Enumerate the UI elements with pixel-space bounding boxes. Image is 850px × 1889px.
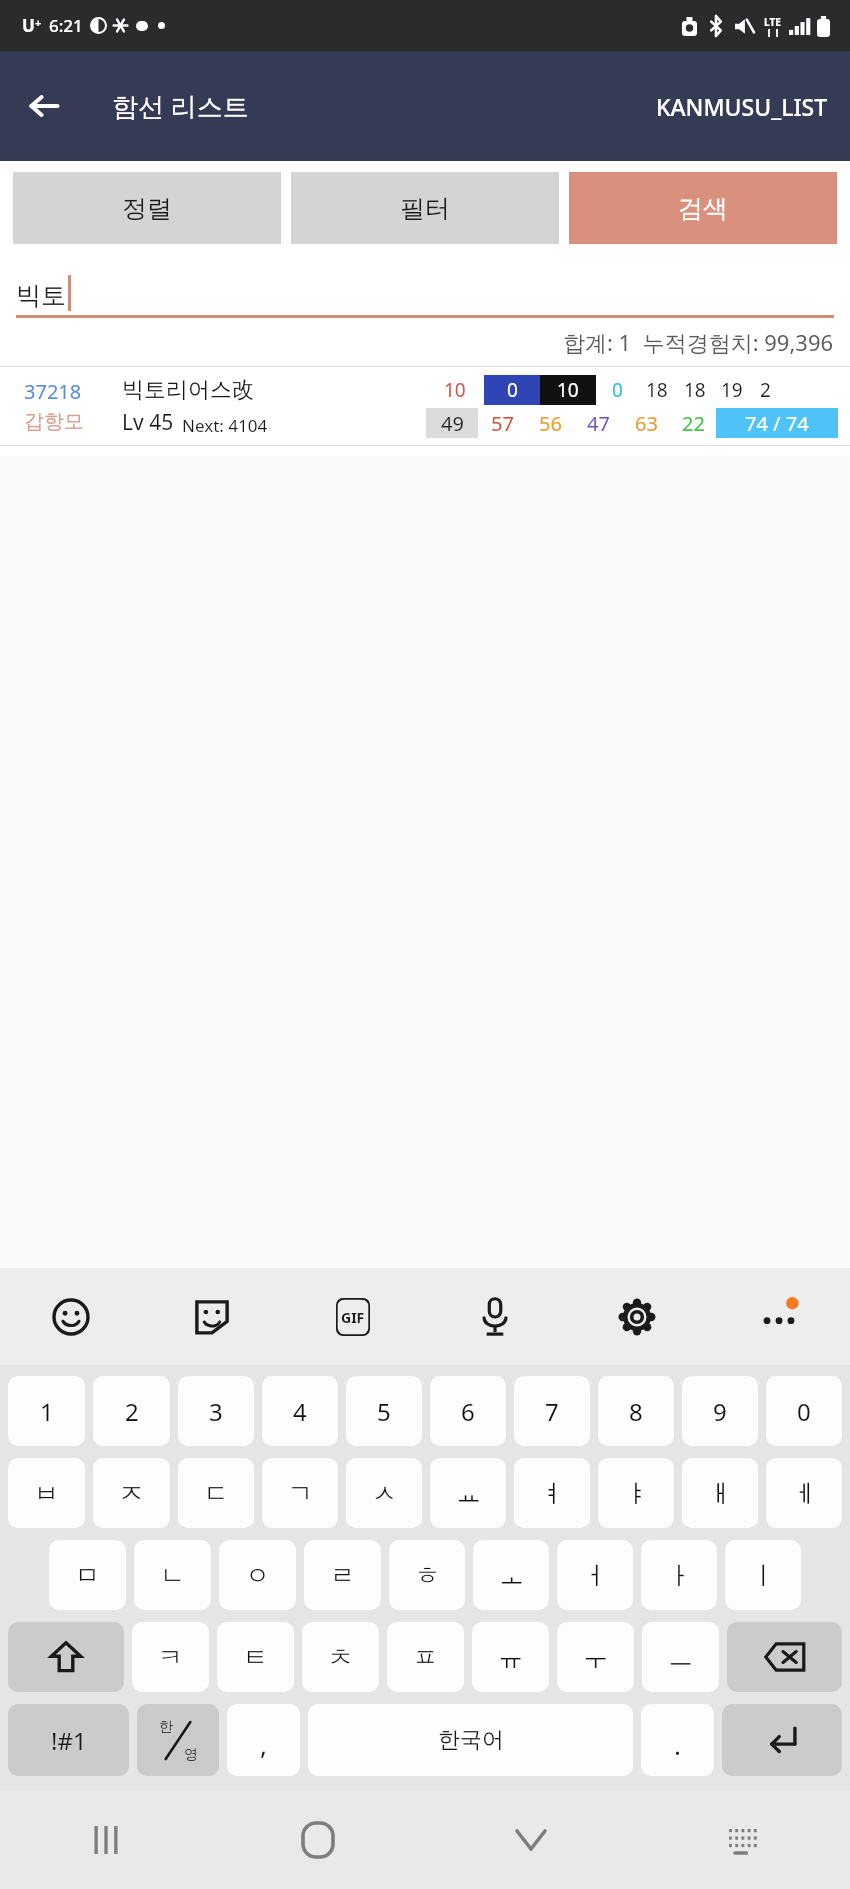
button[interactable]: 8	[598, 1376, 674, 1446]
button[interactable]: ㄱ	[262, 1458, 338, 1528]
button[interactable]: Recent apps	[0, 1790, 212, 1889]
button[interactable]: Backspace	[727, 1622, 842, 1692]
staticText: 빅토리어스改	[122, 376, 254, 404]
staticText: ㅋ	[158, 1642, 183, 1673]
staticText: ㅓ	[583, 1560, 608, 1591]
button[interactable]: Settings	[566, 1268, 708, 1365]
staticText: U	[22, 14, 35, 37]
button[interactable]: Keyboard layout	[637, 1790, 850, 1889]
button[interactable]: 한	[137, 1704, 219, 1776]
button[interactable]: 6	[430, 1376, 506, 1446]
staticText: ㅂ	[34, 1478, 59, 1509]
staticText: 18	[646, 377, 668, 403]
button[interactable]: Back	[16, 78, 72, 134]
button[interactable]: Emoji	[0, 1268, 141, 1365]
staticText: 63	[635, 410, 658, 437]
button[interactable]: ㅊ	[302, 1622, 379, 1692]
button[interactable]: 검색	[569, 172, 837, 244]
button[interactable]: ㅇ	[219, 1540, 296, 1610]
staticText: .	[674, 1727, 681, 1762]
button[interactable]: ㅜ	[557, 1622, 634, 1692]
staticText: ㅗ	[499, 1560, 524, 1591]
button[interactable]: ㄴ	[134, 1540, 211, 1610]
staticText: 49	[441, 410, 464, 437]
staticText: GIF	[341, 1308, 365, 1327]
button[interactable]: ㅓ	[557, 1540, 633, 1610]
staticText: 한국어	[438, 1726, 504, 1754]
button[interactable]: ㅛ	[430, 1458, 506, 1528]
button[interactable]: !#1	[8, 1704, 129, 1776]
button[interactable]: ㅍ	[387, 1622, 464, 1692]
staticText: 37218	[24, 378, 82, 405]
staticText: 0	[797, 1395, 811, 1428]
staticText: 검색	[678, 193, 728, 224]
staticText: ㅇ	[245, 1560, 270, 1591]
button[interactable]: ㅅ	[346, 1458, 422, 1528]
button[interactable]: ㅣ	[725, 1540, 801, 1610]
staticText: 22	[682, 410, 705, 437]
staticText: 한	[159, 1718, 173, 1736]
button[interactable]: ㅁ	[49, 1540, 126, 1610]
button[interactable]: 7	[514, 1376, 590, 1446]
button[interactable]: ㅕ	[514, 1458, 590, 1528]
button[interactable]: ㅌ	[217, 1622, 294, 1692]
button[interactable]: ㅂ	[8, 1458, 85, 1528]
staticText: ㅌ	[243, 1642, 268, 1673]
staticText: LTE	[764, 15, 781, 29]
staticText: 5	[377, 1395, 391, 1428]
staticText: ㅐ	[708, 1478, 733, 1509]
button[interactable]: Sticker	[141, 1268, 282, 1365]
staticText: ㅣ	[751, 1560, 776, 1591]
staticText: ㅡ	[668, 1642, 693, 1673]
button[interactable]: ㅡ	[642, 1622, 719, 1692]
button[interactable]: 한국어	[308, 1704, 633, 1776]
button[interactable]: 9	[682, 1376, 758, 1446]
button[interactable]: 필터	[291, 172, 559, 244]
staticText: 8	[629, 1395, 643, 1428]
staticText: 정렬	[122, 193, 172, 224]
button[interactable]: GIF	[282, 1268, 424, 1365]
button[interactable]: 37218	[0, 367, 850, 445]
button[interactable]: 3	[178, 1376, 254, 1446]
staticText: Lv 45	[122, 408, 174, 437]
staticText: 9	[713, 1395, 727, 1428]
button[interactable]: 4	[262, 1376, 338, 1446]
button[interactable]: Voice input	[424, 1268, 566, 1365]
staticText: ㅊ	[328, 1642, 353, 1673]
button[interactable]: ㅠ	[472, 1622, 549, 1692]
staticText: 4	[293, 1395, 307, 1428]
button[interactable]: ㅗ	[473, 1540, 549, 1610]
button[interactable]: Enter	[722, 1704, 842, 1776]
button[interactable]: More	[708, 1268, 850, 1365]
staticText: 18	[684, 377, 706, 403]
staticText: ㅎ	[415, 1560, 440, 1591]
button[interactable]: Shift	[8, 1622, 124, 1692]
button[interactable]: ㅏ	[641, 1540, 717, 1610]
button[interactable]: 5	[346, 1376, 422, 1446]
button[interactable]: ,	[227, 1704, 300, 1776]
staticText: ㅁ	[75, 1560, 100, 1591]
button[interactable]: ㅋ	[132, 1622, 209, 1692]
button[interactable]: 0	[766, 1376, 842, 1446]
staticText: ㄹ	[330, 1560, 355, 1591]
button[interactable]: 정렬	[13, 172, 281, 244]
button[interactable]: 1	[8, 1376, 85, 1446]
button[interactable]: ㄷ	[178, 1458, 254, 1528]
button[interactable]: ㄹ	[304, 1540, 381, 1610]
staticText: ㅛ	[456, 1478, 481, 1509]
button[interactable]: ㅐ	[682, 1458, 758, 1528]
button[interactable]: Home	[212, 1790, 424, 1889]
button[interactable]: .	[641, 1704, 714, 1776]
button[interactable]: ㅑ	[598, 1458, 674, 1528]
staticText: 0	[612, 377, 623, 403]
staticText: KANMUSU_LIST	[656, 91, 828, 122]
button[interactable]: 2	[93, 1376, 170, 1446]
staticText: ㅜ	[583, 1642, 608, 1673]
staticText: 필터	[400, 193, 450, 224]
staticText: 6	[461, 1395, 475, 1428]
button[interactable]: ㅈ	[93, 1458, 170, 1528]
button[interactable]: Hide keyboard	[424, 1790, 637, 1889]
staticText: ,	[260, 1727, 267, 1762]
button[interactable]: ㅔ	[766, 1458, 842, 1528]
button[interactable]: ㅎ	[389, 1540, 465, 1610]
